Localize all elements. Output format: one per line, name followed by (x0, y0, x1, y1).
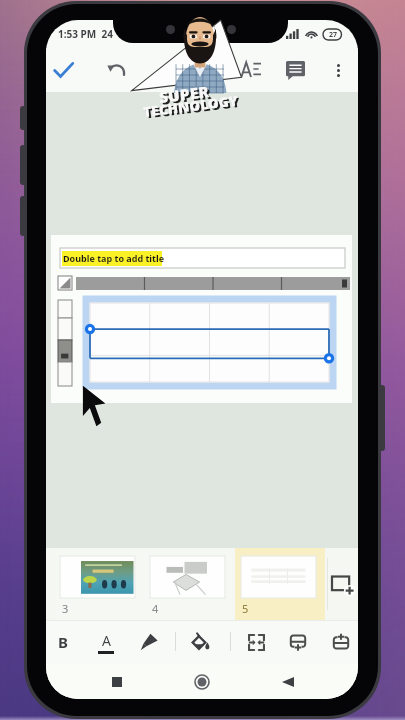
button[interactable]: Text color (87, 620, 124, 664)
button[interactable]: Bold (46, 620, 81, 664)
button[interactable]: Crop (238, 620, 275, 664)
staticText: 5 (242, 601, 249, 616)
button[interactable]: Add slide (328, 548, 358, 620)
button[interactable]: Format text (234, 48, 268, 92)
button[interactable]: Undo (100, 48, 134, 92)
staticText: A (102, 631, 111, 650)
button[interactable]: 5 (235, 548, 325, 620)
button[interactable]: Highlight (130, 620, 167, 664)
staticText: 27 (329, 30, 338, 40)
button[interactable]: Insert column (322, 620, 358, 664)
button[interactable]: Home (187, 667, 217, 697)
button[interactable]: Insert row (279, 620, 316, 664)
button[interactable]: Fill color (182, 620, 219, 664)
button[interactable]: Done (46, 48, 80, 92)
button[interactable]: Comment (278, 48, 312, 92)
staticText: SUPER (158, 81, 211, 107)
button[interactable]: Recents (102, 667, 132, 697)
staticText: 4 (152, 601, 159, 616)
staticText: Double tap to add title (63, 252, 165, 264)
staticText: TECHNOLOGY (144, 93, 242, 123)
staticText: 1:53 PM 24 (58, 27, 113, 41)
button[interactable]: Back (273, 667, 303, 697)
staticText: TECHNOLOGY (142, 91, 240, 121)
staticText: SUPER (160, 83, 213, 109)
button[interactable]: 3 (55, 548, 145, 620)
button[interactable]: More options (321, 48, 355, 92)
staticText: B (58, 632, 68, 652)
button[interactable]: 4 (145, 548, 233, 620)
staticText: 3 (62, 601, 69, 616)
